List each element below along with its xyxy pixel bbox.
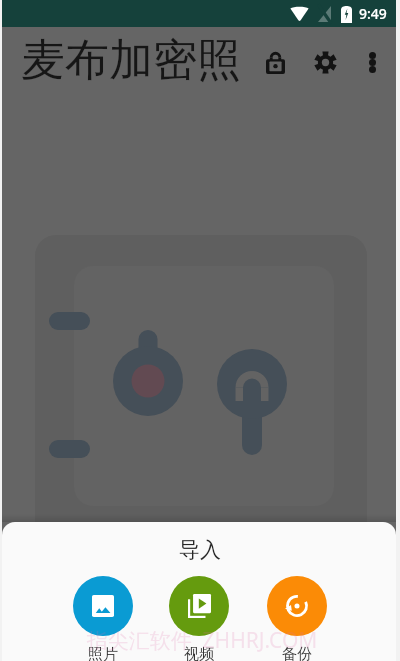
button[interactable]: 备份 [267,576,327,661]
staticText: 备份 [282,645,312,661]
button[interactable]: Lock [258,45,292,79]
staticText: 照片 [88,645,118,661]
staticText: 麦布加密照 [21,33,241,88]
button[interactable]: 照片 [73,576,133,661]
staticText: 指尖汇软件 ZHHRJ.COM [5,626,396,655]
button[interactable]: More options [355,45,389,79]
staticText: 导入 [3,537,396,563]
button[interactable]: 视频 [169,576,229,661]
button[interactable]: Settings [308,45,342,79]
staticText: 视频 [184,645,214,661]
staticText: 9:49 [359,4,387,23]
